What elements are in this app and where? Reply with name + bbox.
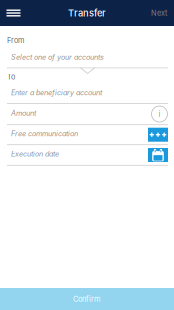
button[interactable]: From [7,26,168,70]
staticText: Execution date [11,150,59,158]
button[interactable]: Structured communication [148,128,168,142]
staticText: Next [151,9,167,17]
button[interactable]: To [7,71,168,103]
staticText: Select one of your accounts [11,53,104,62]
staticText: Enter a beneficiary account [11,88,102,97]
staticText: Amount [11,109,36,117]
staticText: Free communication [11,129,78,138]
staticText: From [7,36,24,45]
staticText: Transfer [68,7,106,19]
button[interactable]: Next [144,0,174,26]
staticText: i [158,109,160,119]
button[interactable]: Choose execution date [148,148,168,162]
staticText: Confirm [73,294,101,303]
staticText: To [7,72,15,81]
button[interactable]: Confirm [0,288,174,310]
button[interactable]: Amount information [151,106,168,122]
button[interactable]: Menu [0,0,27,26]
